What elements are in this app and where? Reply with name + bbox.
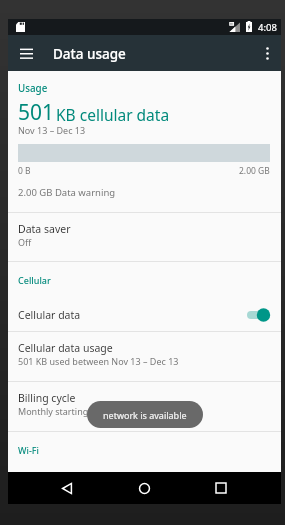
staticText: Usage (18, 82, 48, 95)
button[interactable]: Billing cycle (8, 382, 281, 431)
button[interactable]: Home (121, 472, 167, 504)
staticText: Wi-Fi (18, 444, 39, 456)
staticText: Cellular data (18, 308, 81, 322)
button[interactable]: More options (250, 35, 284, 71)
staticText: 2.00 GB (239, 165, 270, 177)
button[interactable]: Recent apps (198, 472, 244, 504)
button[interactable]: Back (44, 472, 90, 504)
staticText: 4:08 (258, 21, 277, 34)
staticText: Off (18, 236, 32, 248)
staticText: KB cellular data (56, 104, 170, 125)
staticText: Billing cycle (18, 391, 76, 405)
staticText: 501 (18, 98, 55, 127)
staticText: 0 B (18, 165, 31, 177)
staticText: Cellular data usage (18, 341, 113, 355)
staticText: Nov 13 – Dec 13 (18, 124, 86, 136)
button[interactable]: Open navigation menu (7, 35, 45, 71)
staticText: Cellular (18, 274, 51, 286)
staticText: Data saver (18, 222, 71, 236)
staticText: Data usage (53, 45, 126, 63)
staticText: Monthly starting on the 13th (18, 405, 140, 417)
button[interactable]: Cellular data usage (8, 332, 281, 381)
button[interactable]: Cellular data (8, 298, 281, 331)
staticText: 2.00 GB Data warning (18, 186, 116, 199)
button[interactable]: Data saver (8, 213, 281, 261)
staticText: network is available (103, 409, 187, 421)
staticText: 501 KB used between Nov 13 – Dec 13 (18, 355, 179, 367)
